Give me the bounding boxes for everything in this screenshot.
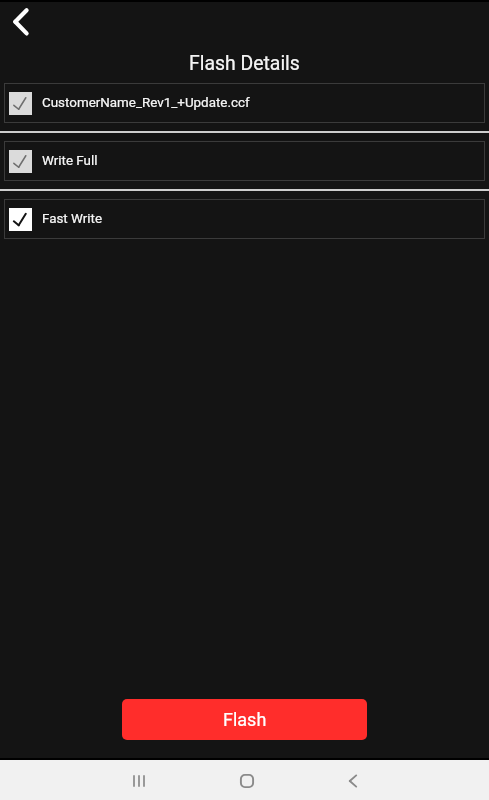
staticText: Flash bbox=[223, 709, 267, 730]
button[interactable]: Recent apps bbox=[119, 760, 159, 800]
button[interactable]: Write Full bbox=[4, 141, 485, 181]
staticText: Fast Write bbox=[42, 211, 103, 227]
staticText: CustomerName_Rev1_+Update.ccf bbox=[42, 95, 250, 111]
button[interactable]: Flash bbox=[122, 699, 367, 740]
button[interactable]: Back bbox=[333, 760, 373, 800]
button[interactable]: CustomerName_Rev1_+Update.ccf bbox=[4, 83, 485, 123]
button[interactable]: Back bbox=[2, 2, 42, 42]
staticText: Write Full bbox=[42, 153, 98, 169]
button[interactable]: Home bbox=[227, 760, 267, 800]
staticText: Flash Details bbox=[189, 52, 300, 75]
button[interactable]: Fast Write bbox=[4, 199, 485, 239]
